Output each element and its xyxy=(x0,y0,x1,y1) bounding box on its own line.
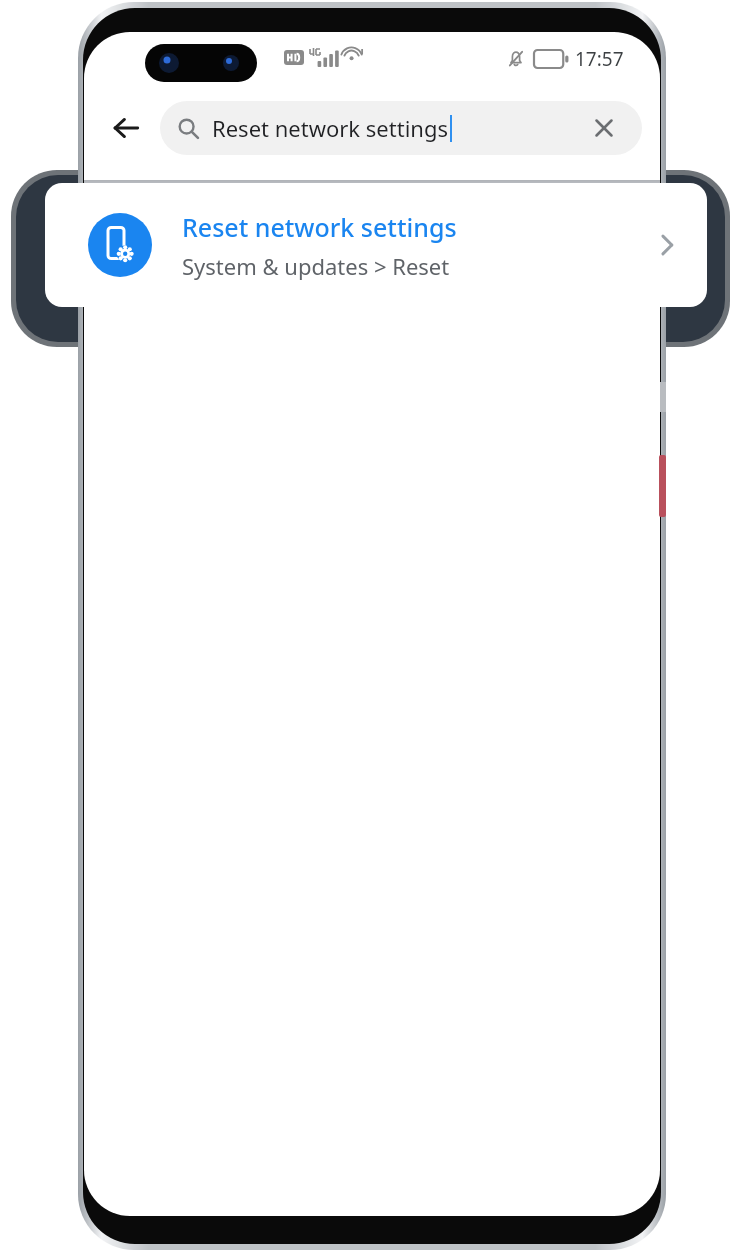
staticText: 17:57 xyxy=(575,46,624,72)
button[interactable]: Reset network settings xyxy=(45,183,707,307)
other: Open xyxy=(641,219,693,271)
staticText: Reset network settings xyxy=(212,113,448,143)
staticText: Reset network settings xyxy=(182,210,457,244)
button[interactable]: Reset network settings xyxy=(160,101,642,155)
button[interactable]: Clear search xyxy=(584,108,624,148)
button[interactable]: Back xyxy=(102,104,150,152)
staticText: System & updates > Reset xyxy=(182,251,450,281)
